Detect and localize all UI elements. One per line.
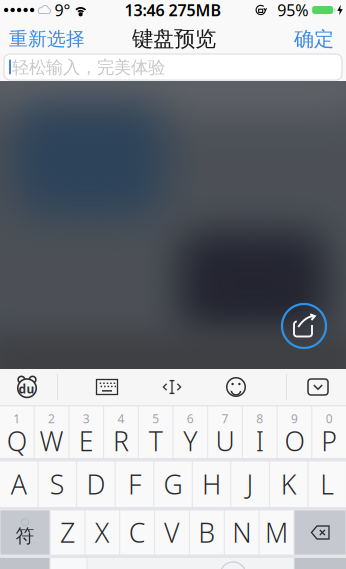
button[interactable]: A: [0, 461, 37, 507]
button[interactable]: V: [155, 510, 189, 554]
staticText: K: [281, 466, 297, 502]
staticText: W: [40, 423, 64, 459]
staticText: A: [11, 466, 27, 502]
staticText: I: [256, 423, 264, 459]
button[interactable]: 9: [278, 406, 311, 458]
staticText: X: [95, 515, 110, 550]
button[interactable]: D: [77, 461, 115, 507]
button[interactable]: 键盘布局: [90, 370, 124, 404]
staticText: 4: [117, 410, 124, 426]
staticText: C: [129, 515, 146, 550]
staticText: F: [128, 466, 141, 502]
staticText: Y: [183, 423, 197, 459]
staticText: P: [321, 423, 337, 459]
button[interactable]: 收起键盘: [301, 370, 335, 404]
staticText: S: [50, 466, 65, 502]
button[interactable]: F: [116, 461, 153, 507]
button[interactable]: 重新选择: [9, 27, 85, 50]
staticText: M: [265, 515, 288, 550]
staticText: 9: [291, 410, 298, 426]
staticText: U: [216, 423, 235, 459]
button[interactable]: L: [308, 461, 346, 507]
button[interactable]: Z: [50, 510, 84, 554]
button[interactable]: 2: [35, 406, 68, 458]
button[interactable]: 表情: [219, 370, 253, 404]
button[interactable]: 光标移动: [155, 370, 189, 404]
button[interactable]: 5: [139, 406, 172, 458]
button[interactable]: X: [85, 510, 119, 554]
button[interactable]: 确定: [294, 27, 334, 51]
button[interactable]: K: [270, 461, 307, 507]
staticText: 7: [222, 410, 229, 426]
staticText: 5: [152, 410, 159, 426]
staticText: G: [163, 466, 182, 502]
button[interactable]: S: [39, 461, 76, 507]
staticText: Q: [7, 423, 27, 459]
button[interactable]: C: [120, 510, 154, 554]
staticText: 3: [83, 410, 90, 426]
staticText: 键盘预览: [132, 26, 216, 52]
staticText: 8: [256, 410, 263, 426]
staticText: 0: [326, 410, 333, 426]
button[interactable]: G: [154, 461, 192, 507]
staticText: 9°: [54, 0, 70, 21]
staticText: 符: [15, 524, 34, 547]
staticText: du: [18, 381, 34, 397]
staticText: 6: [187, 410, 194, 426]
button[interactable]: N: [225, 510, 259, 554]
button[interactable]: 0: [312, 406, 346, 458]
staticText: Z: [60, 515, 75, 550]
button[interactable]: 删除: [294, 510, 345, 554]
staticText: B: [198, 515, 215, 550]
staticText: 95%: [277, 0, 308, 21]
staticText: H: [202, 466, 221, 502]
button[interactable]: H: [193, 461, 230, 507]
staticText: 重新选择: [9, 27, 85, 50]
button[interactable]: 3: [69, 406, 103, 458]
button[interactable]: 分享: [281, 303, 327, 349]
button[interactable]: J: [231, 461, 269, 507]
staticText: 确定: [294, 27, 334, 51]
staticText: 2: [48, 410, 55, 426]
button[interactable]: 7: [208, 406, 242, 458]
staticText: J: [247, 466, 254, 502]
staticText: 轻松输入，完美体验: [12, 57, 165, 78]
button[interactable]: 百度输入法菜单: [10, 370, 44, 404]
button[interactable]: 符: [0, 510, 49, 554]
staticText: E: [79, 423, 94, 459]
button[interactable]: 6: [173, 406, 207, 458]
button[interactable]: 1: [0, 406, 34, 458]
staticText: V: [164, 515, 180, 550]
staticText: O: [284, 423, 304, 459]
button[interactable]: 8: [243, 406, 277, 458]
staticText: 13:46 275MB: [124, 0, 221, 21]
button[interactable]: B: [190, 510, 224, 554]
staticText: T: [149, 423, 163, 459]
staticText: R: [113, 423, 129, 459]
button[interactable]: 4: [104, 406, 138, 458]
staticText: N: [232, 515, 251, 550]
staticText: 1: [13, 410, 20, 426]
staticText: D: [86, 466, 105, 502]
staticText: L: [320, 466, 334, 502]
button[interactable]: M: [260, 510, 293, 554]
